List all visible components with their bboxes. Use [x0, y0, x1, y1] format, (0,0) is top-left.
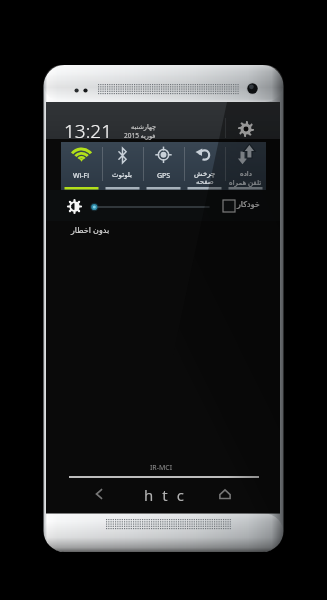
button[interactable]: Wi-Fi	[61, 142, 102, 190]
button[interactable]: Settings	[238, 121, 254, 137]
staticText: 13:21	[64, 118, 113, 144]
button[interactable]: بلوتوث	[102, 142, 143, 190]
staticText: صفحه	[196, 178, 214, 186]
button[interactable]: Brightness slider	[88, 202, 210, 212]
staticText: بلوتوث	[112, 171, 133, 179]
staticText: بدون اخطار	[71, 224, 110, 235]
staticText: GPS	[157, 171, 171, 181]
button[interactable]: GPS	[143, 142, 184, 190]
staticText: فوریه 2015	[124, 131, 156, 140]
staticText: IR-MCI	[150, 463, 173, 473]
button[interactable]: چرخش	[184, 142, 225, 190]
staticText: Wi-Fi	[73, 171, 90, 181]
staticText: htc	[144, 485, 193, 505]
staticText: تلفن همراه	[229, 178, 262, 188]
button[interactable]: داده	[225, 142, 266, 190]
staticText: داده	[240, 170, 252, 178]
button[interactable]: Auto brightness	[223, 200, 235, 212]
staticText: خودکار	[237, 200, 260, 209]
staticText: چرخش	[194, 170, 216, 178]
staticText: چهارشنبه	[131, 123, 156, 131]
button[interactable]: Home	[217, 486, 233, 502]
button[interactable]: Brightness	[68, 200, 81, 213]
button[interactable]: Back	[91, 486, 107, 502]
